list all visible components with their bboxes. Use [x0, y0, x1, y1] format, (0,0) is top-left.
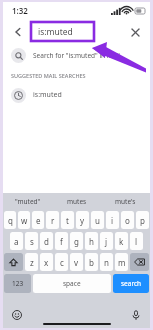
button[interactable]: Dictation	[128, 307, 144, 323]
button[interactable]: j	[100, 232, 113, 250]
staticText: p	[140, 215, 145, 226]
button[interactable]: Back	[8, 22, 28, 42]
button[interactable]: f	[55, 232, 68, 250]
button[interactable]: Shift	[4, 253, 23, 271]
staticText: 1:32	[12, 5, 28, 16]
staticText: m	[118, 257, 126, 268]
button[interactable]: k	[115, 232, 128, 250]
button[interactable]: c	[55, 253, 68, 271]
button[interactable]: Clear	[125, 22, 145, 42]
staticText: l	[135, 236, 138, 247]
staticText: j	[105, 236, 108, 247]
staticText: q	[8, 215, 13, 226]
staticText: v	[74, 257, 79, 268]
staticText: mute's	[115, 197, 136, 206]
button[interactable]: y	[76, 211, 89, 229]
button[interactable]: b	[85, 253, 98, 271]
button[interactable]: "muted"	[3, 193, 52, 209]
button[interactable]: a	[10, 232, 23, 250]
staticText: space	[63, 279, 81, 288]
staticText: n	[104, 257, 109, 268]
staticText: i	[111, 215, 114, 226]
button[interactable]: is:muted	[31, 22, 94, 41]
button[interactable]: Emoji	[9, 307, 25, 323]
staticText: "muted"	[15, 197, 41, 206]
staticText: r	[51, 215, 55, 226]
staticText: a	[14, 236, 19, 247]
staticText: c	[60, 257, 64, 268]
button[interactable]: d	[40, 232, 53, 250]
staticText: mutes	[67, 197, 87, 206]
button[interactable]: o	[121, 211, 134, 229]
staticText: o	[125, 215, 130, 226]
staticText: search	[121, 279, 142, 288]
button[interactable]: 123	[4, 274, 31, 293]
staticText: z	[30, 257, 34, 268]
staticText: t	[66, 215, 69, 226]
button[interactable]: is:muted	[3, 84, 150, 106]
staticText: g	[74, 236, 79, 247]
staticText: x	[44, 257, 49, 268]
staticText: k	[119, 236, 124, 247]
button[interactable]: mutes	[52, 193, 101, 209]
button[interactable]: p	[136, 211, 149, 229]
staticText: SUGGESTED MAIL SEARCHES	[11, 72, 86, 79]
button[interactable]: Search for "is:muted" in mail	[3, 44, 150, 66]
button[interactable]: s	[25, 232, 38, 250]
staticText: d	[44, 236, 49, 247]
button[interactable]: q	[4, 211, 16, 229]
button[interactable]: w	[18, 211, 30, 229]
staticText: s	[30, 236, 34, 247]
button[interactable]: e	[32, 211, 44, 229]
button[interactable]: i	[106, 211, 119, 229]
staticText: b	[89, 257, 94, 268]
button[interactable]: u	[91, 211, 104, 229]
button[interactable]: x	[40, 253, 53, 271]
staticText: e	[36, 215, 41, 226]
staticText: w	[21, 215, 28, 226]
staticText: h	[89, 236, 94, 247]
staticText: Search for "is:muted" in mail	[33, 51, 120, 60]
button[interactable]: h	[85, 232, 98, 250]
button[interactable]: v	[70, 253, 83, 271]
staticText: is:muted	[38, 26, 73, 38]
button[interactable]: l	[130, 232, 143, 250]
button[interactable]: mute's	[101, 193, 150, 209]
staticText: u	[95, 215, 100, 226]
button[interactable]: Backspace	[130, 253, 149, 271]
button[interactable]: search	[113, 274, 149, 293]
staticText: f	[60, 236, 63, 247]
button[interactable]: n	[100, 253, 113, 271]
button[interactable]: m	[115, 253, 128, 271]
button[interactable]: z	[25, 253, 38, 271]
staticText: is:muted	[33, 90, 62, 100]
button[interactable]: r	[46, 211, 59, 229]
button[interactable]: t	[61, 211, 74, 229]
button[interactable]: g	[70, 232, 83, 250]
staticText: 123	[12, 279, 24, 288]
staticText: y	[80, 215, 85, 226]
button[interactable]: space	[33, 274, 111, 293]
